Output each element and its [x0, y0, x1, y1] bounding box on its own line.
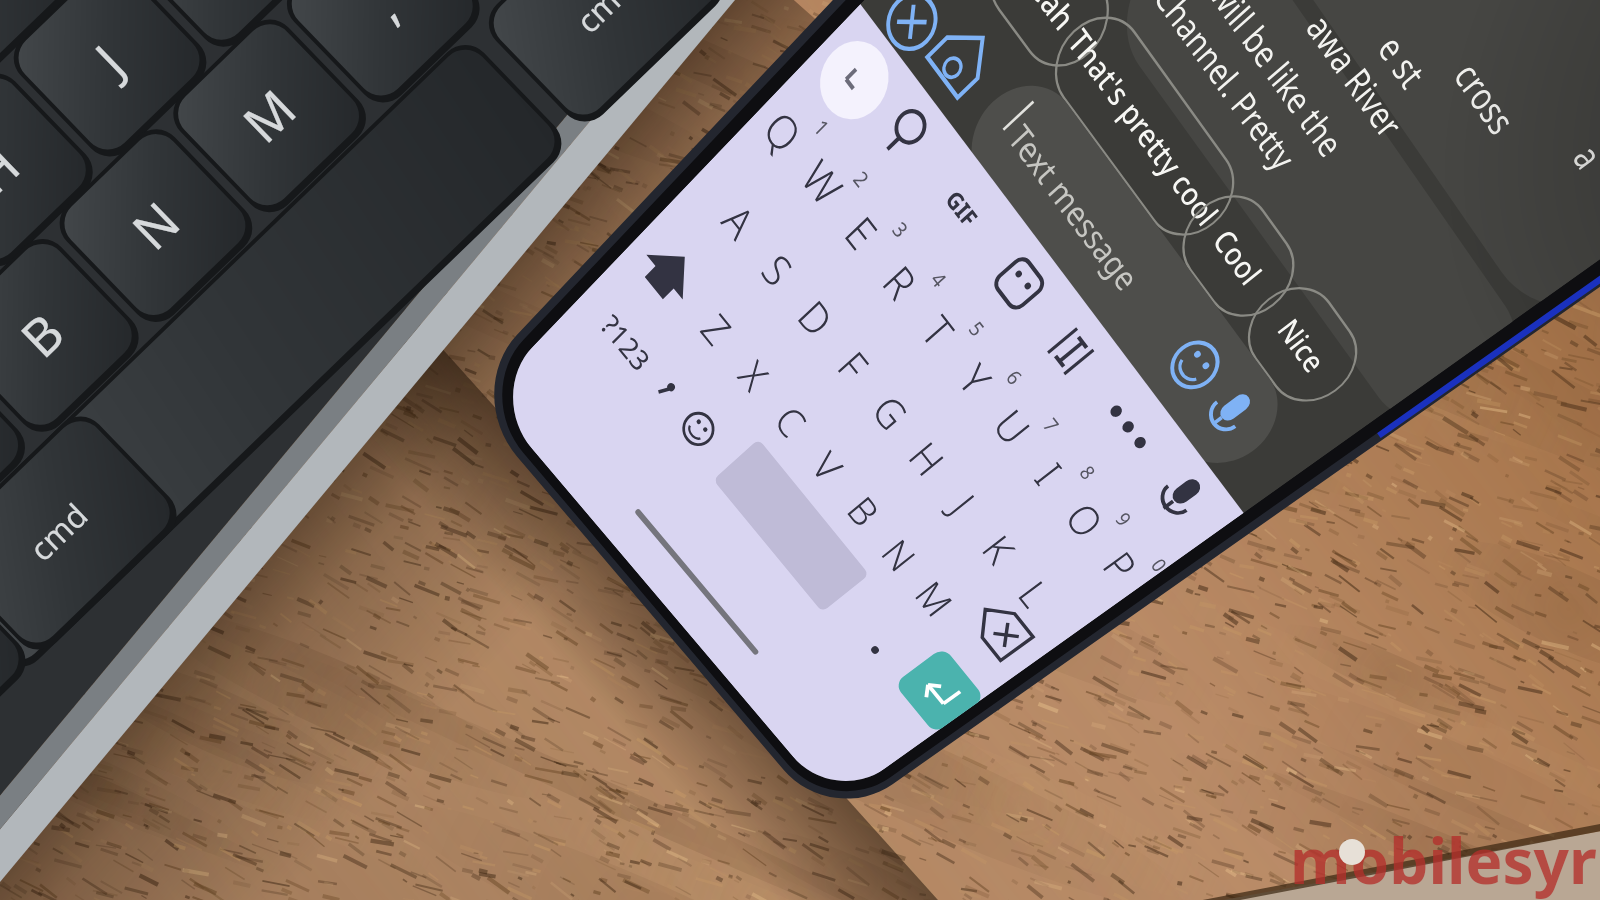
button[interactable]: Smartphone showing a messaging keyboard …	[0, 0, 1600, 900]
